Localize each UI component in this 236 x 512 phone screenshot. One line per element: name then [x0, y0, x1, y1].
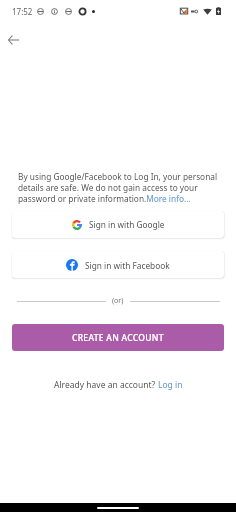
staticText: CREATE AN ACCOUNT	[72, 332, 164, 344]
staticText: Sign in with Google	[89, 219, 165, 230]
staticText: Sign in with Facebook	[85, 260, 170, 271]
staticText: (or)	[112, 296, 124, 306]
button[interactable]: CREATE AN ACCOUNT	[12, 324, 224, 351]
button[interactable]: Sign in with Google	[12, 211, 224, 238]
button[interactable]: Sign in with Facebook	[12, 251, 224, 278]
button[interactable]: Back	[1, 28, 25, 52]
staticText: By using Google/Facebook to Log In, your…	[18, 171, 219, 204]
button[interactable]: Log in	[158, 379, 183, 391]
staticText: Already have an account?	[54, 379, 158, 391]
staticText: 17:52	[12, 6, 33, 17]
